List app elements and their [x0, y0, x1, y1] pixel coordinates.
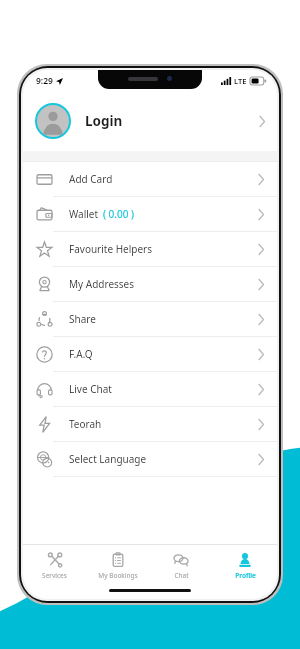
staticText: Add Card — [69, 172, 113, 186]
staticText: Services — [42, 571, 67, 580]
button[interactable]: F.A.Q — [23, 337, 277, 371]
staticText: Wallet — [69, 207, 99, 221]
staticText: Profile — [235, 571, 256, 580]
staticText: 9:29 — [36, 75, 53, 87]
button[interactable]: Share — [23, 302, 277, 336]
staticText: Teorah — [69, 417, 102, 431]
staticText: Share — [69, 312, 96, 326]
staticText: Chat — [174, 571, 189, 580]
button[interactable]: Wallet — [23, 197, 277, 231]
button[interactable]: My Addresses — [23, 267, 277, 301]
button[interactable]: Live Chat — [23, 372, 277, 406]
staticText: My Addresses — [69, 277, 135, 291]
staticText: My Bookings — [98, 571, 138, 580]
button[interactable]: Chat — [149, 549, 213, 580]
button[interactable]: My Bookings — [86, 549, 149, 580]
button[interactable]: Teorah — [23, 407, 277, 441]
staticText: LTE — [234, 76, 247, 86]
button[interactable]: Add Card — [23, 162, 277, 196]
button[interactable]: Services — [23, 549, 86, 580]
staticText: F.A.Q — [69, 347, 93, 361]
button[interactable]: Select Language — [23, 442, 277, 476]
button[interactable]: Login — [23, 91, 277, 151]
staticText: ( 0.00 ) — [103, 207, 135, 221]
staticText: Login — [85, 112, 123, 130]
staticText: Favourite Helpers — [69, 242, 153, 256]
staticText: Live Chat — [69, 382, 112, 396]
button[interactable]: Favourite Helpers — [23, 232, 277, 266]
staticText: Select Language — [69, 452, 147, 466]
button[interactable]: Profile — [213, 549, 277, 580]
